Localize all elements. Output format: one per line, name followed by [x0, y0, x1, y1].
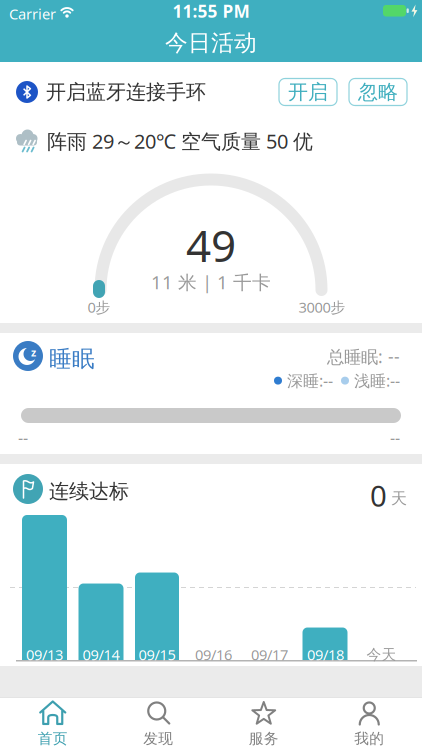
- staticText: 09/17: [251, 645, 288, 664]
- staticText: 11 米 | 1 千卡: [151, 270, 271, 294]
- staticText: z: [31, 345, 36, 359]
- staticText: 深睡:--: [287, 370, 333, 391]
- button[interactable]: 我的: [316, 697, 422, 750]
- staticText: --: [390, 427, 400, 448]
- staticText: 0: [370, 476, 387, 515]
- staticText: 服务: [249, 729, 279, 747]
- staticText: Carrier: [9, 4, 56, 23]
- staticText: 阵雨 29～20℃ 空气质量 50 优: [47, 128, 313, 154]
- button[interactable]: 开启: [279, 78, 337, 105]
- staticText: 天: [391, 489, 407, 508]
- staticText: 发现: [143, 729, 173, 747]
- staticText: 0步: [87, 297, 110, 317]
- staticText: 睡眠: [49, 345, 95, 373]
- staticText: 09/14: [82, 645, 119, 664]
- button[interactable]: 忽略: [349, 78, 407, 105]
- staticText: 49: [186, 216, 236, 274]
- staticText: 3000步: [298, 297, 345, 317]
- button[interactable]: 服务: [211, 697, 316, 750]
- staticText: 09/15: [138, 645, 175, 664]
- staticText: 09/18: [307, 645, 344, 664]
- staticText: --: [18, 427, 28, 448]
- button[interactable]: 首页: [0, 697, 105, 750]
- staticText: 忽略: [358, 80, 398, 104]
- staticText: 我的: [354, 729, 384, 747]
- staticText: 今天: [366, 645, 396, 663]
- staticText: 开启蓝牙连接手环: [46, 80, 206, 104]
- staticText: 今日活动: [165, 29, 257, 57]
- staticText: 浅睡:--: [354, 370, 400, 391]
- button[interactable]: 发现: [105, 697, 211, 750]
- staticText: 09/16: [195, 645, 232, 664]
- staticText: 总睡眠: --: [327, 345, 400, 368]
- staticText: 首页: [38, 729, 68, 747]
- staticText: 09/13: [26, 645, 63, 664]
- staticText: 连续达标: [49, 479, 129, 504]
- staticText: 11:55 PM: [172, 0, 249, 23]
- staticText: 开启: [288, 80, 328, 104]
